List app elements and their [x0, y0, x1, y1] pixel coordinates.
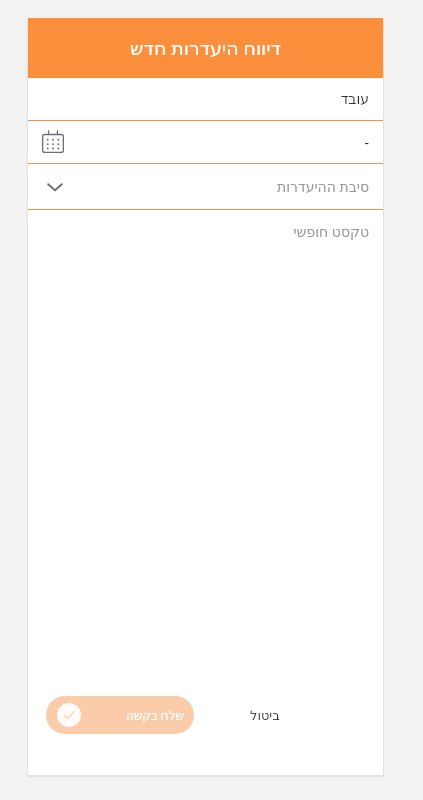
staticText: דיווח היעדרות חדש — [130, 35, 281, 61]
staticText: עובד — [340, 91, 369, 107]
other: Pick date — [38, 127, 68, 157]
button[interactable]: ביטול — [238, 696, 292, 734]
button[interactable]: עובד — [28, 78, 383, 120]
staticText: ביטול — [250, 708, 280, 723]
staticText: שלח בקשה — [125, 707, 184, 723]
staticText: סיבת ההיעדרות — [277, 177, 369, 196]
staticText: - — [364, 133, 369, 152]
button[interactable]: Expand reason list — [28, 164, 383, 209]
button[interactable]: טקסט חופשי — [28, 210, 383, 695]
button[interactable]: Pick date — [28, 121, 383, 163]
button[interactable]: שלח בקשה — [46, 696, 194, 734]
staticText: טקסט חופשי — [293, 222, 369, 241]
other: Expand reason list — [42, 174, 68, 200]
